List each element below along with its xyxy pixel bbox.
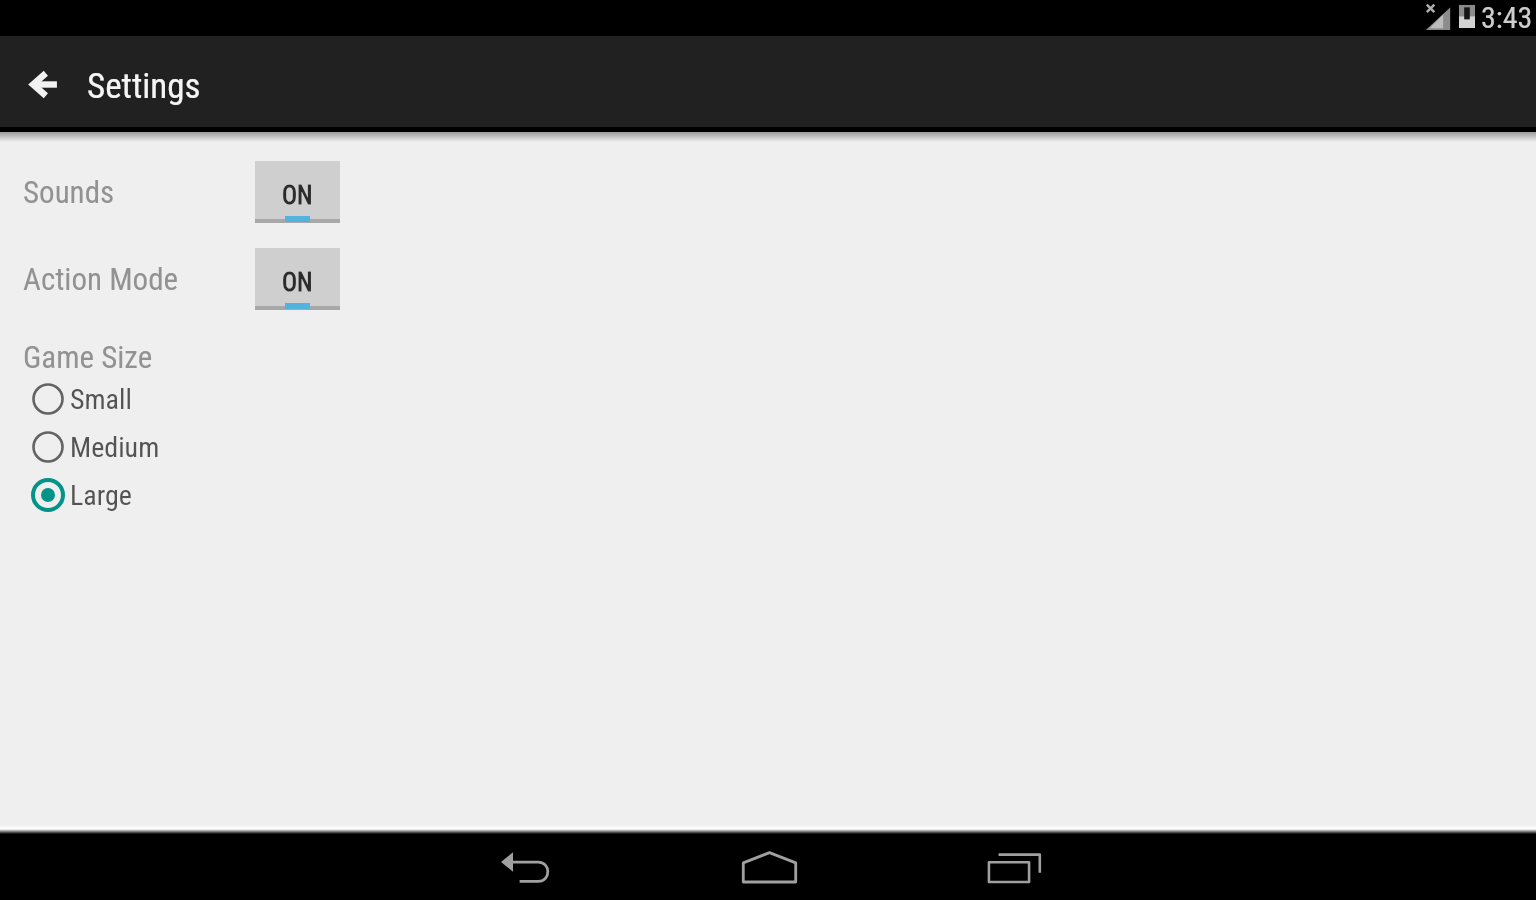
staticText: Sounds — [23, 174, 115, 210]
button[interactable]: Recent apps — [957, 834, 1072, 900]
button[interactable]: Back — [14, 36, 70, 127]
staticText: 3:43 — [1481, 0, 1533, 35]
staticText: ON — [282, 268, 313, 297]
staticText: Medium — [70, 431, 160, 464]
staticText: Large — [70, 479, 132, 512]
staticText: ON — [282, 181, 313, 210]
staticText: Small — [70, 383, 132, 416]
button[interactable]: Large — [0, 471, 1536, 519]
button[interactable]: ON — [255, 248, 340, 310]
button[interactable]: Back — [468, 834, 583, 900]
button[interactable]: Small — [0, 375, 1536, 423]
button[interactable]: ON — [255, 161, 340, 223]
button[interactable]: Medium — [0, 423, 1536, 471]
staticText: Action Mode — [23, 261, 179, 297]
button[interactable]: Home — [712, 834, 827, 900]
staticText: Game Size — [23, 339, 153, 375]
staticText: Settings — [87, 66, 201, 107]
